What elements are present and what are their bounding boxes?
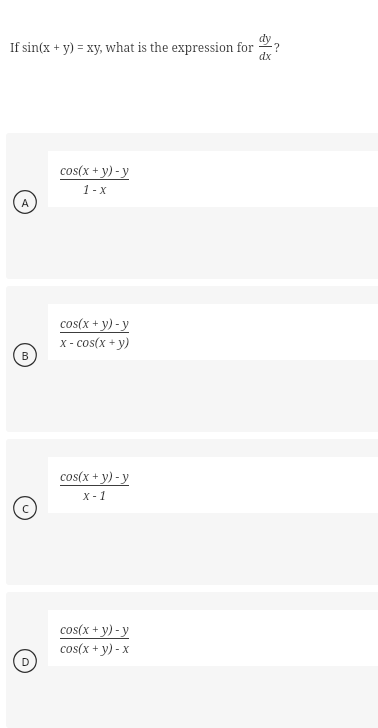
staticText: C xyxy=(22,501,29,516)
staticText: A xyxy=(21,195,29,210)
staticText: dx xyxy=(259,48,272,63)
staticText: If sin(x + y) = xy, what is the expressi… xyxy=(10,39,254,55)
button[interactable]: Option D xyxy=(6,592,378,728)
staticText: x − cos(x + y) xyxy=(60,334,129,350)
staticText: cos(x + y) − y xyxy=(60,468,129,484)
staticText: B xyxy=(21,348,29,363)
staticText: ? xyxy=(274,39,280,55)
staticText: cos(x + y) − y xyxy=(60,315,129,331)
staticText: dy xyxy=(259,30,272,45)
button[interactable]: Option C xyxy=(6,439,378,585)
staticText: cos(x + y) − x xyxy=(60,640,129,656)
staticText: x − 1 xyxy=(83,487,107,503)
button[interactable]: Option A xyxy=(6,133,378,279)
button[interactable]: Option B xyxy=(6,286,378,432)
staticText: cos(x + y) − y xyxy=(60,162,129,178)
staticText: 1 − x xyxy=(83,181,107,197)
staticText: D xyxy=(21,654,30,669)
staticText: cos(x + y) − y xyxy=(60,621,129,637)
